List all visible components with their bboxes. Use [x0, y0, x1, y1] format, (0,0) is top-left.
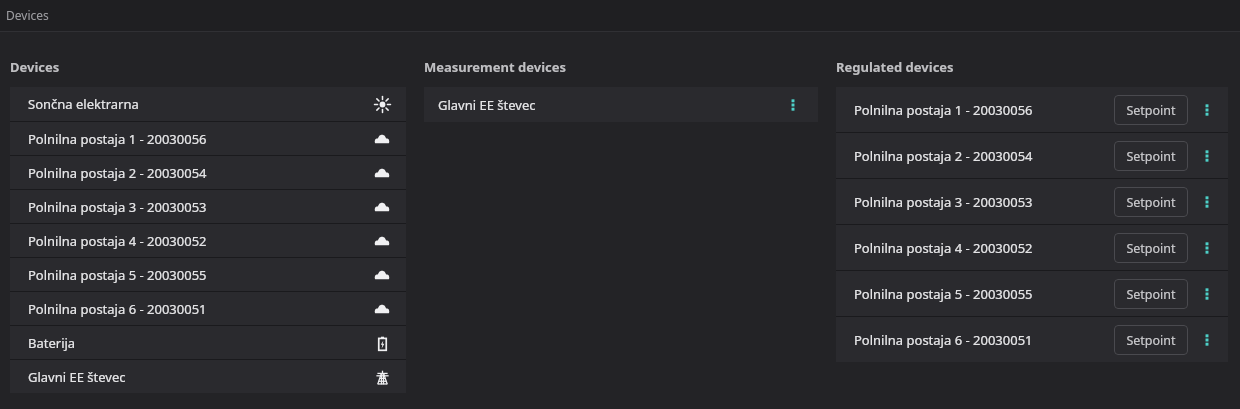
button[interactable]: More options — [782, 94, 804, 116]
button[interactable]: Polnilna postaja 3 - 20030053 — [836, 179, 1228, 224]
button[interactable]: Polnilna postaja 5 - 20030055 — [836, 271, 1228, 316]
staticText: Setpoint — [1126, 240, 1176, 257]
button[interactable]: Polnilna postaja 2 - 20030054 — [836, 133, 1228, 178]
staticText: Polnilna postaja 5 - 20030055 — [28, 266, 207, 284]
staticText: Polnilna postaja 2 - 20030054 — [28, 164, 207, 182]
staticText: Polnilna postaja 4 - 20030052 — [854, 239, 1033, 257]
button[interactable]: More options — [1196, 283, 1218, 305]
staticText: Devices — [6, 7, 49, 23]
staticText: Setpoint — [1126, 102, 1176, 119]
button[interactable]: More options — [1196, 145, 1218, 167]
button[interactable]: Polnilna postaja 1 - 20030056 — [836, 87, 1228, 132]
staticText: Polnilna postaja 3 - 20030053 — [28, 198, 207, 216]
staticText: Devices — [10, 58, 60, 76]
button[interactable]: Polnilna postaja 4 - 20030052 — [836, 225, 1228, 270]
button[interactable]: Polnilna postaja 4 - 20030052 — [10, 224, 406, 257]
staticText: Glavni EE števec — [438, 96, 536, 114]
staticText: Polnilna postaja 6 - 20030051 — [28, 300, 207, 318]
staticText: Polnilna postaja 5 - 20030055 — [854, 285, 1033, 303]
button[interactable]: Sončna elektrarna — [10, 87, 406, 121]
staticText: Setpoint — [1126, 148, 1176, 165]
staticText: Polnilna postaja 3 - 20030053 — [854, 193, 1033, 211]
button[interactable]: More options — [1196, 329, 1218, 351]
button[interactable]: Polnilna postaja 5 - 20030055 — [10, 258, 406, 291]
staticText: Glavni EE števec — [28, 368, 126, 386]
staticText: Polnilna postaja 1 - 20030056 — [28, 130, 207, 148]
staticText: Polnilna postaja 6 - 20030051 — [854, 331, 1033, 349]
button[interactable]: Polnilna postaja 2 - 20030054 — [10, 156, 406, 189]
button[interactable]: Polnilna postaja 6 - 20030051 — [10, 292, 406, 325]
staticText: Baterija — [28, 334, 76, 352]
button[interactable]: Setpoint — [1114, 95, 1188, 125]
button[interactable]: More options — [1196, 191, 1218, 213]
button[interactable]: Polnilna postaja 6 - 20030051 — [836, 317, 1228, 362]
staticText: Setpoint — [1126, 332, 1176, 349]
staticText: Polnilna postaja 1 - 20030056 — [854, 101, 1033, 119]
button[interactable]: Setpoint — [1114, 325, 1188, 355]
staticText: Setpoint — [1126, 194, 1176, 211]
staticText: Polnilna postaja 2 - 20030054 — [854, 147, 1033, 165]
button[interactable]: Baterija — [10, 326, 406, 359]
button[interactable]: Polnilna postaja 3 - 20030053 — [10, 190, 406, 223]
button[interactable]: More options — [1196, 99, 1218, 121]
button[interactable]: Polnilna postaja 1 - 20030056 — [10, 122, 406, 155]
button[interactable]: More options — [1196, 237, 1218, 259]
button[interactable]: Setpoint — [1114, 187, 1188, 217]
button[interactable]: Glavni EE števec — [10, 360, 406, 393]
button[interactable]: Glavni EE števec — [424, 87, 818, 122]
staticText: Polnilna postaja 4 - 20030052 — [28, 232, 207, 250]
button[interactable]: Setpoint — [1114, 141, 1188, 171]
staticText: Measurement devices — [424, 58, 567, 76]
staticText: Sončna elektrarna — [28, 95, 139, 113]
staticText: Setpoint — [1126, 286, 1176, 303]
button[interactable]: Setpoint — [1114, 233, 1188, 263]
button[interactable]: Setpoint — [1114, 279, 1188, 309]
staticText: Regulated devices — [836, 58, 954, 76]
